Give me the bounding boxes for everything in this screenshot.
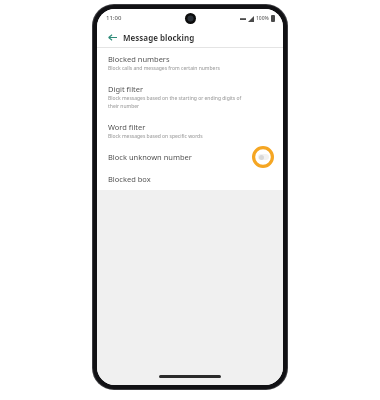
staticText: 100% — [256, 15, 269, 22]
staticText: Block calls and messages from certain nu… — [108, 65, 220, 72]
button[interactable]: Blocked box — [97, 168, 283, 190]
staticText: Word filter — [108, 122, 146, 132]
staticText: Block messages based on the starting or … — [108, 95, 242, 102]
staticText: Block unknown number — [108, 152, 252, 162]
staticText: Blocked numbers — [108, 54, 170, 64]
staticText: Blocked box — [108, 174, 151, 184]
staticText: their number — [108, 103, 140, 110]
staticText: Digit filter — [108, 84, 144, 94]
staticText: 11:00 — [106, 14, 122, 22]
staticText: Block messages based on specific words — [108, 133, 203, 140]
button[interactable]: Word filter — [97, 116, 283, 146]
staticText: Message blocking — [123, 32, 195, 43]
button[interactable]: Blocked numbers — [97, 48, 283, 78]
other: Block unknown number toggle — [252, 146, 274, 168]
button[interactable]: Digit filter — [97, 78, 283, 116]
button[interactable]: Block unknown number — [97, 146, 283, 168]
button[interactable]: Back — [105, 30, 119, 44]
